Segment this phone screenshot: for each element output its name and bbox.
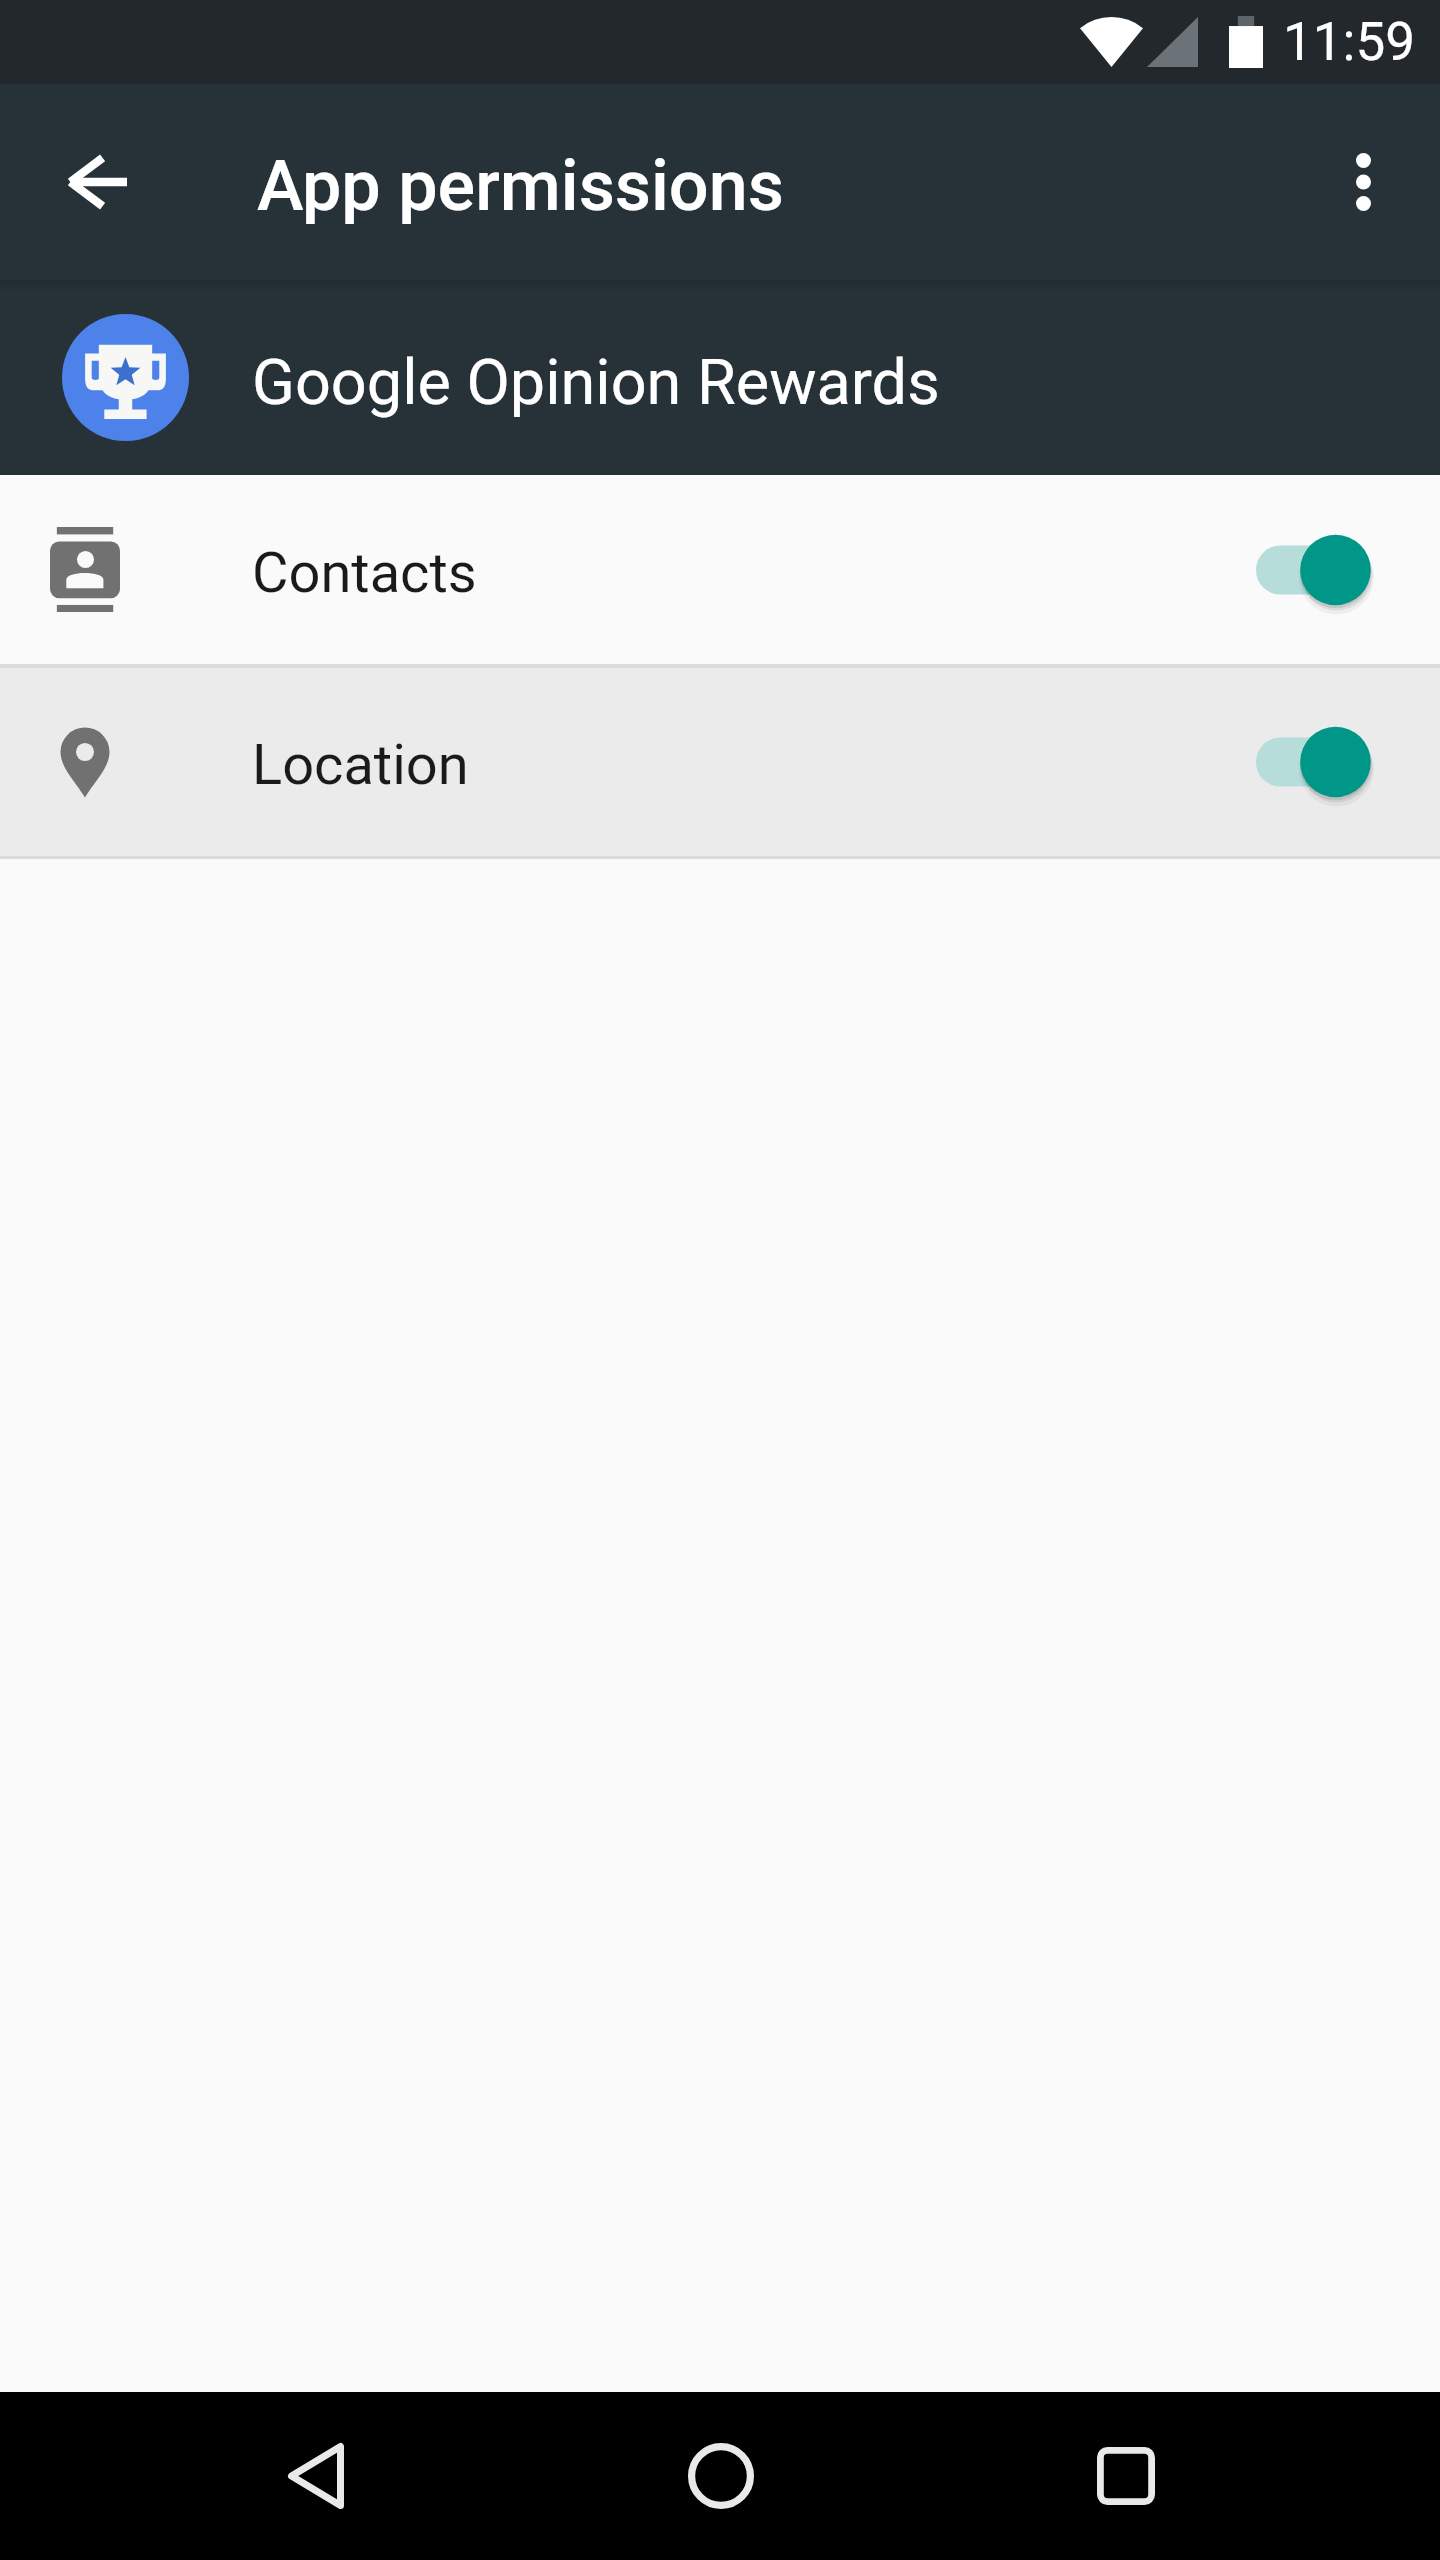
button[interactable]: Contacts permission toggle xyxy=(1251,507,1419,633)
staticText: Location xyxy=(252,732,469,798)
staticText: Contacts xyxy=(252,540,477,606)
button[interactable]: More options xyxy=(1298,117,1428,247)
button[interactable]: Location permission toggle xyxy=(1251,699,1419,825)
staticText: 11:59 xyxy=(1283,11,1415,73)
staticText: App permissions xyxy=(257,145,784,227)
button[interactable]: Navigate up xyxy=(31,117,161,247)
button[interactable]: Back xyxy=(232,2392,400,2560)
button[interactable]: Google Opinion Rewards xyxy=(0,280,1440,475)
button[interactable]: Recent apps xyxy=(1042,2392,1210,2560)
staticText: Google Opinion Rewards xyxy=(252,346,940,420)
button[interactable]: Home xyxy=(637,2392,805,2560)
button[interactable]: Contacts xyxy=(0,475,1440,664)
button[interactable]: Location xyxy=(0,668,1440,856)
